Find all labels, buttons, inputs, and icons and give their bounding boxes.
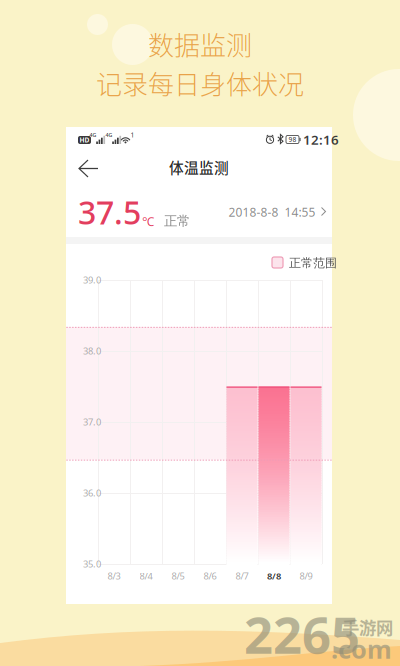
staticText: 正常范围 <box>289 256 337 270</box>
staticText: 4G <box>89 131 96 139</box>
staticText: 1 <box>130 131 134 139</box>
staticText: HD <box>79 136 89 144</box>
staticText: 8/5 <box>171 570 184 582</box>
staticText: 4G <box>105 131 112 139</box>
button[interactable]: 2018-8-8 14:55 <box>228 204 327 220</box>
staticText: 38.0 <box>83 345 101 357</box>
staticText: 8/6 <box>203 570 216 582</box>
staticText: 12:16 <box>303 131 339 148</box>
staticText: 8/8 <box>267 570 281 582</box>
staticText: 手游网 <box>342 614 393 640</box>
staticText: 8/4 <box>139 570 152 582</box>
staticText: 数据监测 <box>148 25 252 63</box>
staticText: 正常 <box>164 213 190 229</box>
staticText: 37.5 <box>78 191 141 233</box>
staticText: 2265 <box>244 600 360 666</box>
staticText: 37.0 <box>83 416 101 428</box>
staticText: 8/9 <box>299 570 312 582</box>
staticText: 36.0 <box>83 487 101 499</box>
staticText: 体温监测 <box>169 156 229 178</box>
button[interactable]: Back <box>72 152 106 184</box>
staticText: 8/7 <box>235 570 248 582</box>
staticText: 98 <box>288 135 296 144</box>
staticText: .com <box>331 632 392 666</box>
staticText: ℃ <box>142 213 154 229</box>
staticText: 39.0 <box>83 274 101 286</box>
staticText: 8/3 <box>107 570 120 582</box>
staticText: 记录每日身体状况 <box>96 64 304 102</box>
staticText: 35.0 <box>83 558 101 570</box>
staticText: 2018-8-8 14:55 <box>228 204 315 220</box>
